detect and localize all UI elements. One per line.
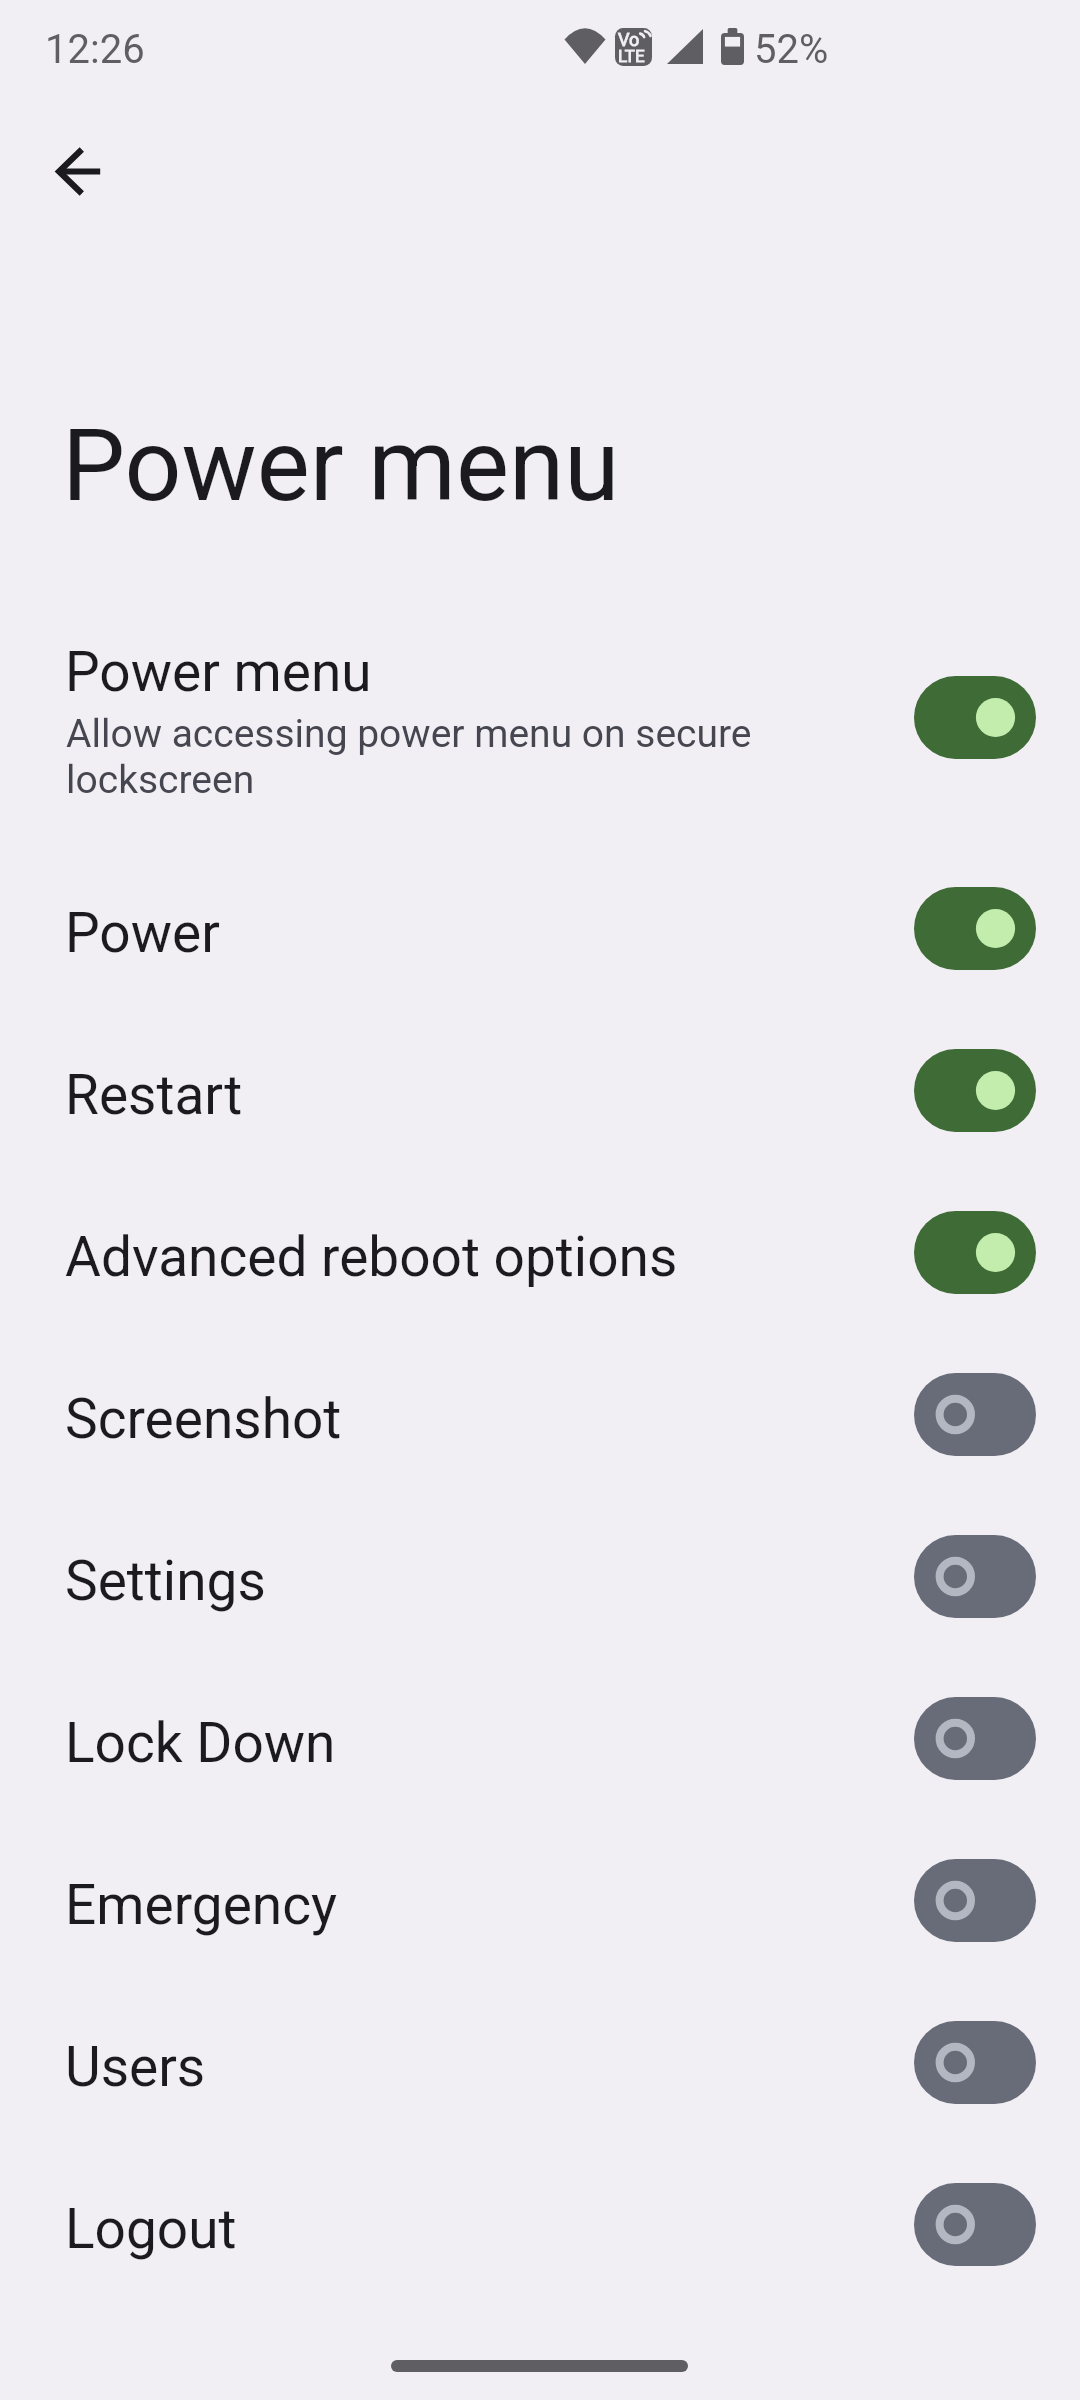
button[interactable]: Power, on [914, 887, 1036, 970]
button[interactable]: Power [0, 847, 1080, 1009]
staticText: Logout [65, 2197, 237, 2261]
staticText: Advanced reboot options [65, 1225, 678, 1289]
button[interactable]: Emergency [0, 1819, 1080, 1981]
staticText: Power menu [65, 640, 372, 704]
button[interactable]: Settings [0, 1495, 1080, 1657]
staticText: Lock Down [65, 1711, 336, 1775]
button[interactable]: Advanced reboot options, on [914, 1211, 1036, 1294]
button[interactable]: Settings, off [914, 1535, 1036, 1618]
button[interactable]: Restart [0, 1009, 1080, 1171]
button[interactable]: Lock Down [0, 1657, 1080, 1819]
button[interactable]: Advanced reboot options [0, 1171, 1080, 1333]
button[interactable]: Lock Down, off [914, 1697, 1036, 1780]
staticText: Vo [618, 29, 640, 50]
staticText: Power menu [62, 407, 620, 524]
staticText: 52% [754, 26, 829, 73]
staticText: LTE [618, 46, 645, 66]
button[interactable]: Users [0, 1981, 1080, 2143]
staticText: Allow accessing power menu on secure loc… [66, 711, 786, 802]
staticText: Power [65, 901, 220, 965]
button[interactable]: Logout, off [914, 2183, 1036, 2266]
staticText: Screenshot [65, 1387, 342, 1451]
button[interactable]: Navigate up [35, 128, 123, 216]
button[interactable]: Logout [0, 2143, 1080, 2305]
button[interactable]: Restart, on [914, 1049, 1036, 1132]
staticText: Users [65, 2035, 206, 2099]
button[interactable]: Screenshot [0, 1333, 1080, 1495]
button[interactable]: Screenshot, off [914, 1373, 1036, 1456]
button[interactable]: Power menu [0, 590, 1080, 844]
button[interactable]: Users, off [914, 2021, 1036, 2104]
staticText: Emergency [65, 1873, 338, 1937]
staticText: 12:26 [45, 26, 145, 73]
button[interactable]: Emergency, off [914, 1859, 1036, 1942]
staticText: Settings [65, 1549, 266, 1613]
button[interactable]: Power menu, on [914, 676, 1036, 759]
staticText: Restart [65, 1063, 243, 1127]
